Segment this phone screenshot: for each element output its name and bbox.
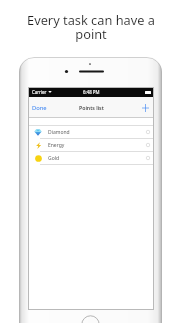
button[interactable]: Add	[140, 103, 150, 113]
button[interactable]: Diamond	[28, 126, 154, 139]
button[interactable]: Gold	[28, 152, 154, 165]
staticText: Every task can have a point	[22, 11, 160, 43]
staticText: Diamond	[48, 129, 70, 136]
staticText: Carrier	[32, 89, 47, 95]
button[interactable]: Done	[32, 104, 47, 112]
staticText: Gold	[48, 155, 60, 162]
staticText: Done	[32, 104, 47, 112]
staticText: 6:48 PM	[83, 89, 100, 95]
staticText: Energy	[48, 142, 65, 149]
staticText: Points list	[79, 104, 104, 111]
button[interactable]: Energy	[28, 139, 154, 152]
